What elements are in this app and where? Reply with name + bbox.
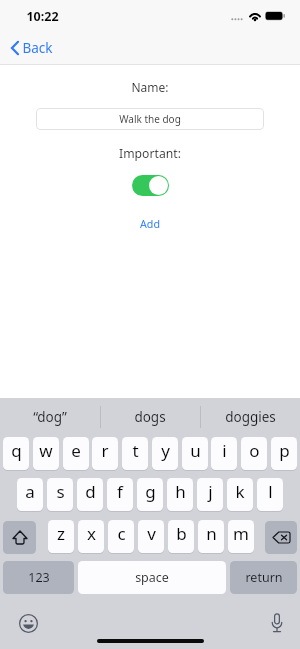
button[interactable]: p: [271, 437, 297, 471]
button[interactable]: e: [63, 437, 89, 471]
staticText: f: [117, 480, 123, 503]
staticText: Back: [22, 39, 53, 57]
button[interactable]: doggies: [200, 398, 300, 436]
button[interactable]: s: [47, 478, 73, 512]
staticText: space: [135, 569, 169, 586]
button[interactable]: return: [230, 561, 297, 594]
button[interactable]: g: [137, 478, 163, 512]
staticText: 123: [28, 569, 50, 586]
button[interactable]: m: [228, 520, 254, 554]
staticText: q: [11, 439, 22, 462]
button[interactable]: h: [167, 478, 193, 512]
staticText: s: [56, 480, 65, 503]
button[interactable]: r: [92, 437, 118, 471]
button[interactable]: o: [241, 437, 267, 471]
staticText: r: [101, 439, 109, 462]
staticText: z: [57, 522, 65, 545]
staticText: t: [132, 439, 139, 462]
staticText: b: [176, 522, 187, 545]
staticText: m: [233, 522, 249, 545]
button[interactable]: n: [198, 520, 224, 554]
button[interactable]: Back: [11, 39, 53, 57]
button[interactable]: x: [78, 520, 104, 554]
staticText: x: [87, 522, 96, 545]
staticText: k: [235, 480, 245, 503]
staticText: Walk the dog: [119, 112, 181, 126]
staticText: y: [161, 439, 170, 462]
staticText: a: [25, 480, 35, 503]
button[interactable]: i: [211, 437, 237, 471]
button[interactable]: Backspace: [265, 521, 297, 554]
staticText: Important:: [0, 145, 300, 162]
staticText: return: [245, 569, 283, 586]
staticText: g: [145, 480, 156, 503]
button[interactable]: u: [182, 437, 208, 471]
staticText: o: [249, 439, 260, 462]
button[interactable]: q: [3, 437, 29, 471]
staticText: v: [147, 522, 156, 545]
button[interactable]: dogs: [100, 398, 200, 436]
staticText: “dog”: [33, 408, 67, 426]
button[interactable]: d: [77, 478, 103, 512]
staticText: n: [206, 522, 217, 545]
staticText: d: [85, 480, 96, 503]
button[interactable]: j: [197, 478, 223, 512]
staticText: 10:22: [26, 8, 59, 25]
staticText: l: [268, 480, 273, 503]
button[interactable]: z: [48, 520, 74, 554]
staticText: Add: [140, 217, 160, 232]
button[interactable]: k: [227, 478, 253, 512]
button[interactable]: a: [17, 478, 43, 512]
button[interactable]: t: [122, 437, 148, 471]
button[interactable]: Walk the dog: [36, 108, 264, 130]
staticText: h: [175, 480, 186, 503]
button[interactable]: b: [168, 520, 194, 554]
staticText: u: [190, 439, 201, 462]
button[interactable]: c: [108, 520, 134, 554]
staticText: w: [39, 439, 53, 462]
button[interactable]: space: [78, 561, 226, 594]
button[interactable]: Dictation: [270, 613, 284, 633]
button[interactable]: y: [152, 437, 178, 471]
staticText: dogs: [134, 408, 166, 426]
button[interactable]: v: [138, 520, 164, 554]
staticText: c: [117, 522, 126, 545]
button[interactable]: w: [33, 437, 59, 471]
staticText: p: [279, 439, 290, 462]
button[interactable]: Emoji keyboard: [19, 614, 38, 633]
staticText: i: [222, 439, 227, 462]
button[interactable]: Important toggle: [132, 175, 169, 196]
staticText: Name:: [0, 79, 300, 95]
staticText: j: [208, 480, 213, 503]
button[interactable]: l: [257, 478, 283, 512]
staticText: e: [71, 439, 81, 462]
button[interactable]: Shift: [3, 521, 36, 554]
staticText: doggies: [225, 408, 276, 426]
button[interactable]: Add: [140, 217, 160, 232]
button[interactable]: 123: [3, 561, 74, 594]
button[interactable]: f: [107, 478, 133, 512]
button[interactable]: “dog”: [0, 398, 100, 436]
